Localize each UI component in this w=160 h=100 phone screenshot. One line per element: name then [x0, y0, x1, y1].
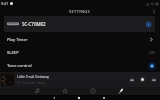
- staticText: SETTINGS: [69, 9, 91, 14]
- staticText: Off: [149, 50, 155, 55]
- button[interactable]: Back: [52, 96, 56, 100]
- staticText: SLEEP: [7, 50, 19, 56]
- button[interactable]: SC-C70MK2: [4, 16, 155, 32]
- staticText: Play Timer: [7, 37, 28, 43]
- button[interactable]: Previous: [128, 76, 136, 84]
- button[interactable]: Play Timer: [0, 33, 160, 46]
- button[interactable]: Home: [77, 96, 81, 100]
- staticText: Tone control: [7, 63, 32, 69]
- button[interactable]: Pause: [138, 75, 147, 84]
- button[interactable]: Tone control: [0, 59, 160, 72]
- button[interactable]: Timer: [89, 87, 97, 95]
- button[interactable]: Recents: [102, 96, 106, 100]
- staticText: Little Truck Getaway: [17, 74, 50, 79]
- button[interactable]: Little Truck Getaway: [0, 72, 160, 87]
- button[interactable]: Favorites: [61, 87, 69, 95]
- staticText: 9:41: [1, 1, 9, 6]
- button[interactable]: Voice: [117, 87, 125, 95]
- button[interactable]: Music: [33, 87, 41, 95]
- staticText: SC-C70MK2: [22, 21, 46, 27]
- button[interactable]: Next: [150, 76, 158, 84]
- button[interactable]: SLEEP: [0, 46, 160, 59]
- staticText: The Sandman - Remix: [17, 81, 46, 85]
